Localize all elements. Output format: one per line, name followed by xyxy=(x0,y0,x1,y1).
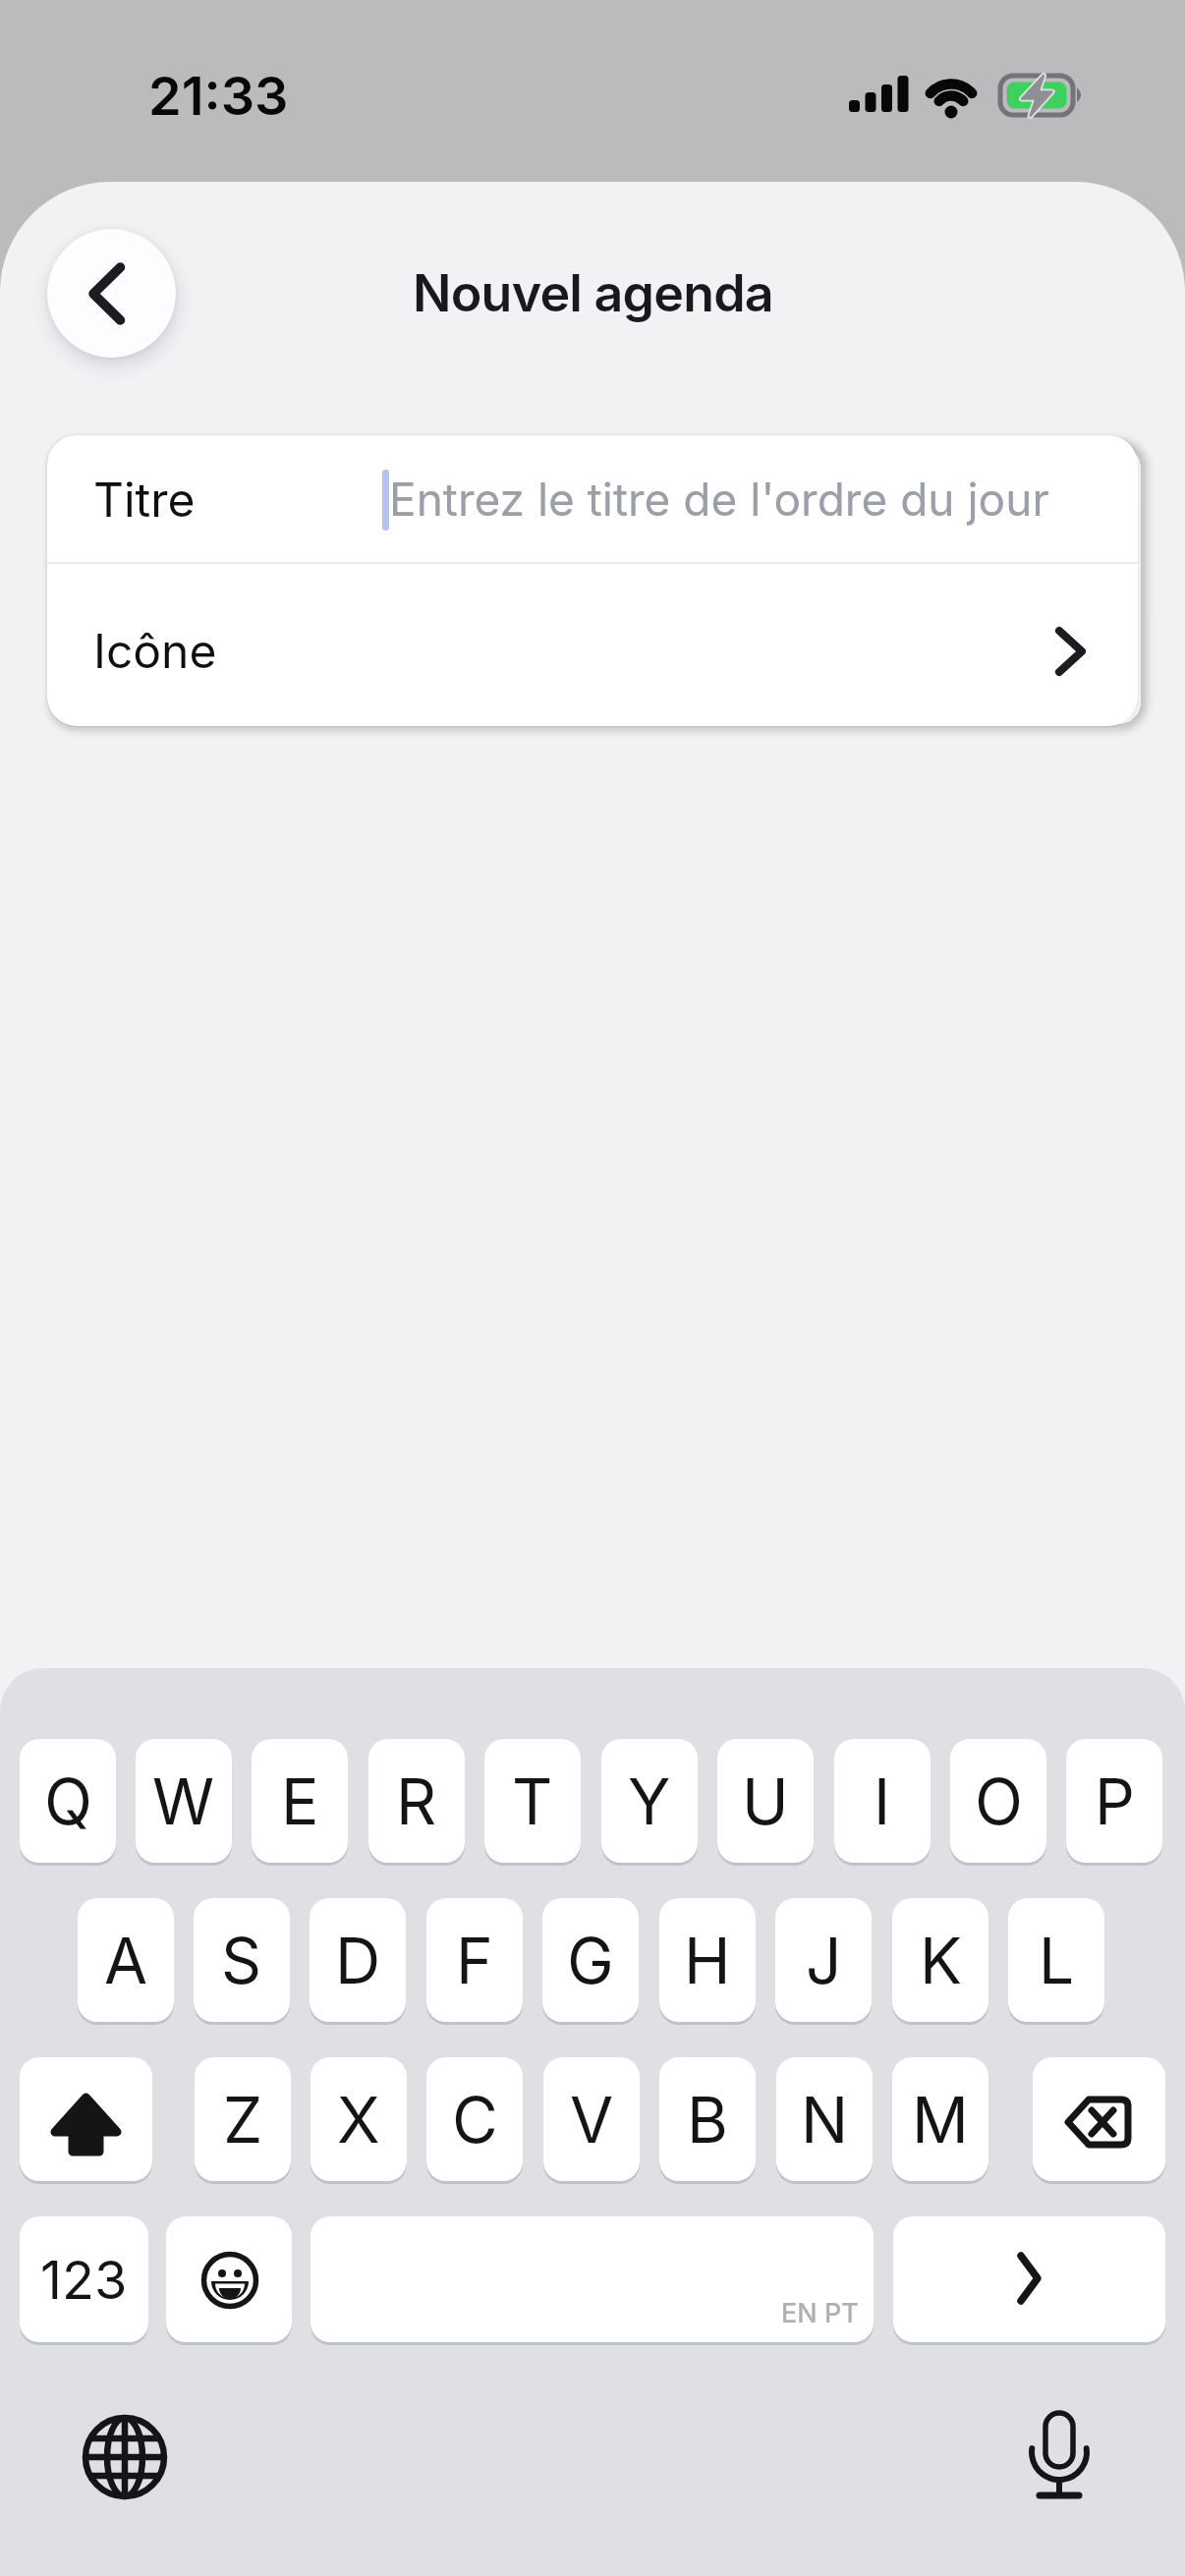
button[interactable]: G xyxy=(542,1898,639,2022)
staticText: H xyxy=(684,1923,731,1998)
button[interactable]: R xyxy=(368,1739,465,1863)
button[interactable]: S xyxy=(194,1898,290,2022)
button[interactable]: O xyxy=(950,1739,1046,1863)
button[interactable]: M xyxy=(892,2057,988,2181)
button[interactable] xyxy=(1033,2057,1165,2181)
button[interactable]: H xyxy=(659,1898,756,2022)
staticText: W xyxy=(152,1764,215,1839)
staticText: R xyxy=(396,1764,437,1839)
staticText: 21:33 xyxy=(148,64,289,128)
button[interactable]: D xyxy=(310,1898,406,2022)
staticText: EN PT xyxy=(781,2297,859,2329)
staticText: N xyxy=(801,2082,849,2157)
button[interactable]: 123 xyxy=(20,2216,148,2342)
staticText: Entrez le titre de l'ordre du jour xyxy=(389,472,1049,527)
button[interactable]: V xyxy=(543,2057,640,2181)
staticText: O xyxy=(975,1764,1023,1839)
button[interactable] xyxy=(1011,2409,1107,2505)
button[interactable]: U xyxy=(717,1739,814,1863)
button[interactable]: N xyxy=(776,2057,873,2181)
staticText: S xyxy=(221,1923,262,1998)
staticText: Q xyxy=(44,1764,92,1839)
staticText: G xyxy=(567,1923,614,1998)
button[interactable]: Titre xyxy=(47,435,1138,564)
button[interactable] xyxy=(893,2216,1165,2342)
button[interactable] xyxy=(310,2216,874,2342)
staticText: D xyxy=(335,1923,381,1998)
button[interactable]: K xyxy=(892,1898,988,2022)
button[interactable]: L xyxy=(1008,1898,1104,2022)
button[interactable]: B xyxy=(659,2057,756,2181)
staticText: E xyxy=(281,1764,319,1839)
button[interactable]: P xyxy=(1066,1739,1162,1863)
button[interactable]: F xyxy=(426,1898,523,2022)
staticText: U xyxy=(742,1764,789,1839)
button[interactable] xyxy=(166,2216,292,2342)
staticText: K xyxy=(920,1923,962,1998)
button[interactable]: E xyxy=(252,1739,348,1863)
staticText: L xyxy=(1039,1923,1075,1998)
button[interactable] xyxy=(47,229,176,358)
button[interactable]: X xyxy=(310,2057,407,2181)
staticText: V xyxy=(570,2082,614,2157)
staticText: Titre xyxy=(93,471,196,528)
staticText: Z xyxy=(223,2082,263,2157)
button[interactable]: C xyxy=(426,2057,523,2181)
staticText: M xyxy=(912,2082,969,2157)
staticText: J xyxy=(806,1923,842,1998)
staticText: P xyxy=(1095,1764,1135,1839)
staticText: B xyxy=(687,2082,728,2157)
staticText: A xyxy=(104,1923,148,1998)
staticText: F xyxy=(456,1923,493,1998)
button[interactable]: Icône xyxy=(47,564,1138,726)
staticText: C xyxy=(452,2082,498,2157)
staticText: Icône xyxy=(93,622,217,679)
button[interactable]: A xyxy=(78,1898,174,2022)
button[interactable]: J xyxy=(775,1898,872,2022)
button[interactable]: Y xyxy=(601,1739,698,1863)
staticText: 123 xyxy=(40,2248,128,2312)
staticText: Nouvel agenda xyxy=(413,262,773,324)
button[interactable]: I xyxy=(834,1739,931,1863)
button[interactable]: W xyxy=(136,1739,232,1863)
button[interactable] xyxy=(77,2409,173,2505)
button[interactable]: T xyxy=(484,1739,581,1863)
button[interactable]: Q xyxy=(20,1739,116,1863)
staticText: T xyxy=(512,1764,553,1839)
staticText: Y xyxy=(628,1764,671,1839)
button[interactable] xyxy=(20,2057,152,2181)
staticText: X xyxy=(337,2082,380,2157)
button[interactable]: Z xyxy=(195,2057,291,2181)
staticText: I xyxy=(874,1764,891,1839)
